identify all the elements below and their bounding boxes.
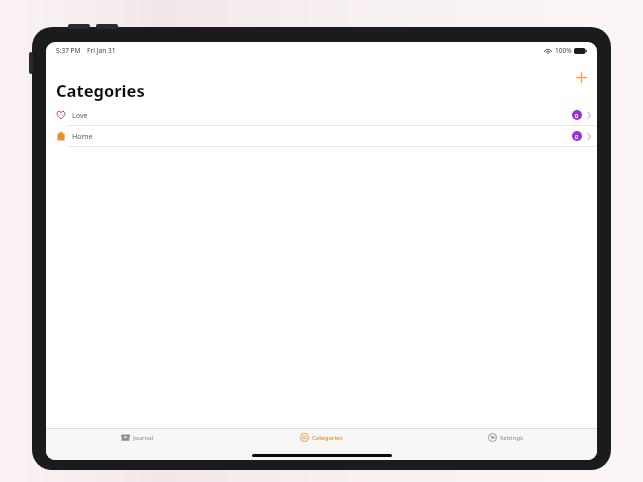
button[interactable]: Add category [569,65,593,89]
staticText: 5:37 PM [56,46,81,55]
staticText: 0 [575,133,579,140]
button[interactable]: Journal [46,429,229,460]
button[interactable]: Home [46,126,597,146]
staticText: Categories [312,434,343,442]
staticText: 0 [575,112,579,119]
button[interactable]: Categories [229,429,413,460]
staticText: Home [72,131,93,141]
staticText: Journal [133,434,154,442]
staticText: Settings [500,434,523,442]
staticText: Categories [56,79,145,101]
button[interactable]: Settings [413,429,597,460]
staticText: 100% [555,46,572,55]
staticText: Love [72,110,88,120]
staticText: Fri Jan 31 [87,46,116,55]
button[interactable]: Love [46,105,597,125]
